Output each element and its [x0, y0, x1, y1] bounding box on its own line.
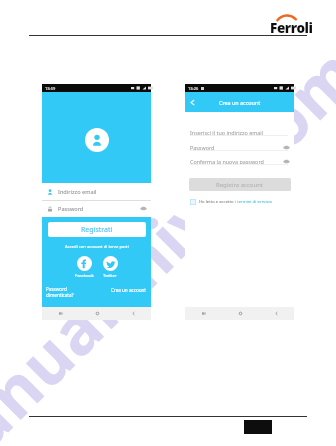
button[interactable]: Back — [115, 307, 151, 320]
button[interactable]: Recents — [185, 307, 222, 320]
staticText: Password — [46, 286, 67, 292]
button[interactable]: Password — [42, 200, 151, 217]
staticText: Ferroli — [270, 19, 313, 37]
staticText: Indirizzo email — [58, 188, 97, 196]
staticText: Inserisci il tuo indirizzo email — [190, 129, 264, 136]
button[interactable]: Home — [79, 307, 115, 320]
button[interactable]: Indirizzo email — [42, 183, 151, 200]
button[interactable]: Home — [222, 307, 258, 320]
button[interactable]: Twitter — [95, 256, 125, 279]
staticText: Conferma la nuova password — [190, 158, 264, 165]
staticText: Registrati — [81, 225, 113, 235]
button[interactable]: Registrati — [48, 222, 146, 237]
button[interactable]: Back — [189, 99, 196, 106]
button[interactable]: Back — [258, 307, 294, 320]
staticText: 13:59 — [45, 86, 56, 91]
staticText: dimenticata? — [46, 292, 74, 298]
staticText: Ho letto e accetto — [199, 199, 235, 205]
staticText: Crea un account — [219, 99, 261, 106]
staticText: Password — [58, 205, 84, 213]
button[interactable]: Facebook — [69, 256, 99, 279]
staticText: Crea un account — [42, 287, 146, 293]
staticText: manualshive.com — [0, 0, 336, 446]
staticText: Registra account — [216, 181, 264, 189]
button[interactable]: Registra account — [189, 178, 291, 191]
staticText: Facebook — [75, 273, 94, 279]
button[interactable]: Inserisci il tuo indirizzo email — [185, 125, 294, 139]
button[interactable]: Conferma la nuova password — [185, 154, 294, 168]
button[interactable]: Ho letto e accetto — [190, 199, 273, 205]
button[interactable]: Password — [185, 140, 294, 154]
staticText: i termini di servizio — [235, 199, 273, 205]
staticText: Password — [190, 144, 215, 151]
staticText: Accedi con account di terze parti — [65, 244, 129, 250]
staticText: Twitter — [103, 273, 117, 279]
button[interactable]: Recents — [42, 307, 79, 320]
staticText: 13:26 — [188, 86, 199, 91]
